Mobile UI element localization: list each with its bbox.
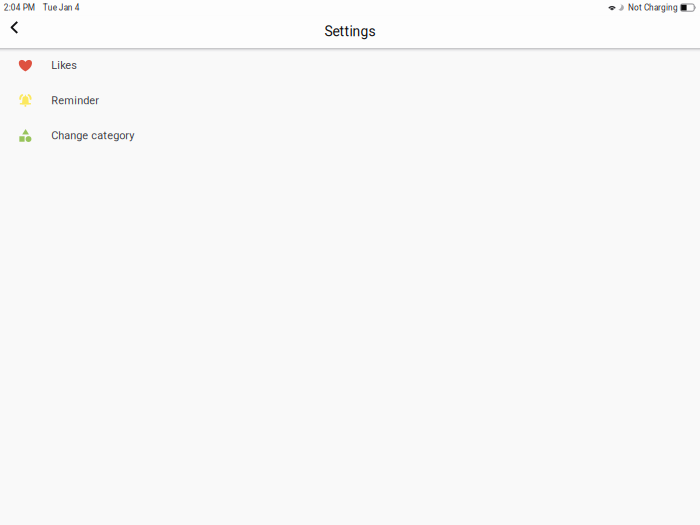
staticText: Change category <box>51 129 134 142</box>
button[interactable]: Likes <box>0 48 700 83</box>
staticText: Tue Jan 4 <box>43 3 80 12</box>
button[interactable]: Change category <box>0 118 700 153</box>
staticText: Settings <box>324 23 375 40</box>
staticText: Reminder <box>51 94 99 107</box>
staticText: Not Charging <box>628 3 678 12</box>
button[interactable]: Back <box>0 15 25 48</box>
button[interactable]: Reminder <box>0 83 700 118</box>
staticText: Likes <box>51 59 77 72</box>
staticText: 2:04 PM <box>4 3 35 12</box>
